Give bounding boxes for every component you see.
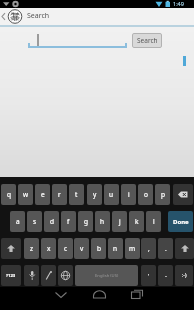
- button[interactable]: r: [52, 184, 67, 205]
- staticText: m: [129, 244, 136, 253]
- staticText: z: [30, 244, 34, 253]
- staticText: -: [165, 272, 167, 280]
- button[interactable]: s: [27, 211, 42, 232]
- staticText: q: [7, 190, 11, 199]
- button[interactable]: a: [10, 211, 25, 232]
- button[interactable]: g: [78, 211, 93, 232]
- staticText: w: [23, 190, 29, 199]
- button[interactable]: [173, 184, 193, 205]
- staticText: u: [109, 190, 114, 199]
- staticText: g: [84, 217, 88, 226]
- button[interactable]: u: [104, 184, 119, 205]
- button[interactable]: [41, 265, 56, 286]
- button[interactable]: j: [112, 211, 127, 232]
- staticText: e: [41, 190, 45, 199]
- button[interactable]: [0, 8, 194, 25]
- button[interactable]: q: [1, 184, 16, 205]
- button[interactable]: [1, 238, 21, 259]
- staticText: s: [33, 217, 37, 226]
- button[interactable]: :-): [175, 265, 193, 286]
- button[interactable]: ,: [141, 238, 156, 259]
- button[interactable]: Search: [132, 33, 162, 48]
- staticText: y: [93, 190, 97, 199]
- staticText: o: [144, 190, 148, 199]
- button[interactable]: c: [58, 238, 73, 259]
- button[interactable]: [24, 265, 39, 286]
- staticText: i: [128, 190, 130, 199]
- staticText: Search: [137, 36, 158, 45]
- button[interactable]: k: [129, 211, 144, 232]
- button[interactable]: ?123: [1, 265, 21, 286]
- button[interactable]: n: [108, 238, 123, 259]
- staticText: Done: [173, 218, 189, 226]
- staticText: r: [58, 190, 61, 199]
- button[interactable]: x: [41, 238, 56, 259]
- button[interactable]: p: [155, 184, 170, 205]
- button[interactable]: d: [44, 211, 59, 232]
- staticText: ': [148, 272, 150, 280]
- button[interactable]: .: [158, 238, 173, 259]
- button[interactable]: l: [146, 211, 161, 232]
- staticText: x: [47, 244, 51, 253]
- staticText: ?123: [6, 273, 16, 279]
- button[interactable]: y: [87, 184, 102, 205]
- staticText: ,: [148, 244, 150, 253]
- button[interactable]: f: [61, 211, 76, 232]
- staticText: English (US): [95, 273, 119, 279]
- staticText: k: [135, 217, 139, 226]
- button[interactable]: [84, 287, 114, 310]
- button[interactable]: ': [141, 265, 156, 286]
- button[interactable]: [58, 265, 73, 286]
- staticText: l: [153, 217, 155, 226]
- button[interactable]: o: [138, 184, 153, 205]
- button[interactable]: [175, 238, 194, 259]
- staticText: b: [97, 244, 101, 253]
- button[interactable]: m: [125, 238, 140, 259]
- staticText: a: [16, 217, 20, 226]
- button[interactable]: English (US): [75, 265, 138, 286]
- staticText: j: [119, 217, 121, 226]
- button[interactable]: i: [121, 184, 136, 205]
- button[interactable]: t: [69, 184, 84, 205]
- button[interactable]: Done: [168, 211, 193, 232]
- staticText: Search: [27, 11, 50, 21]
- button[interactable]: [122, 287, 152, 310]
- button[interactable]: h: [95, 211, 110, 232]
- button[interactable]: z: [24, 238, 39, 259]
- button[interactable]: v: [74, 238, 89, 259]
- staticText: h: [100, 217, 105, 226]
- staticText: :-): [182, 272, 187, 279]
- staticText: n: [113, 244, 118, 253]
- button[interactable]: [47, 287, 77, 310]
- button[interactable]: -: [158, 265, 173, 286]
- staticText: t: [75, 190, 78, 199]
- staticText: 1:49: [173, 0, 184, 7]
- staticText: p: [161, 190, 165, 199]
- staticText: v: [80, 244, 84, 253]
- staticText: f: [67, 217, 70, 226]
- staticText: c: [64, 244, 68, 253]
- staticText: .: [165, 244, 167, 253]
- button[interactable]: e: [35, 184, 50, 205]
- button[interactable]: b: [91, 238, 106, 259]
- button[interactable]: w: [18, 184, 33, 205]
- staticText: d: [50, 217, 54, 226]
